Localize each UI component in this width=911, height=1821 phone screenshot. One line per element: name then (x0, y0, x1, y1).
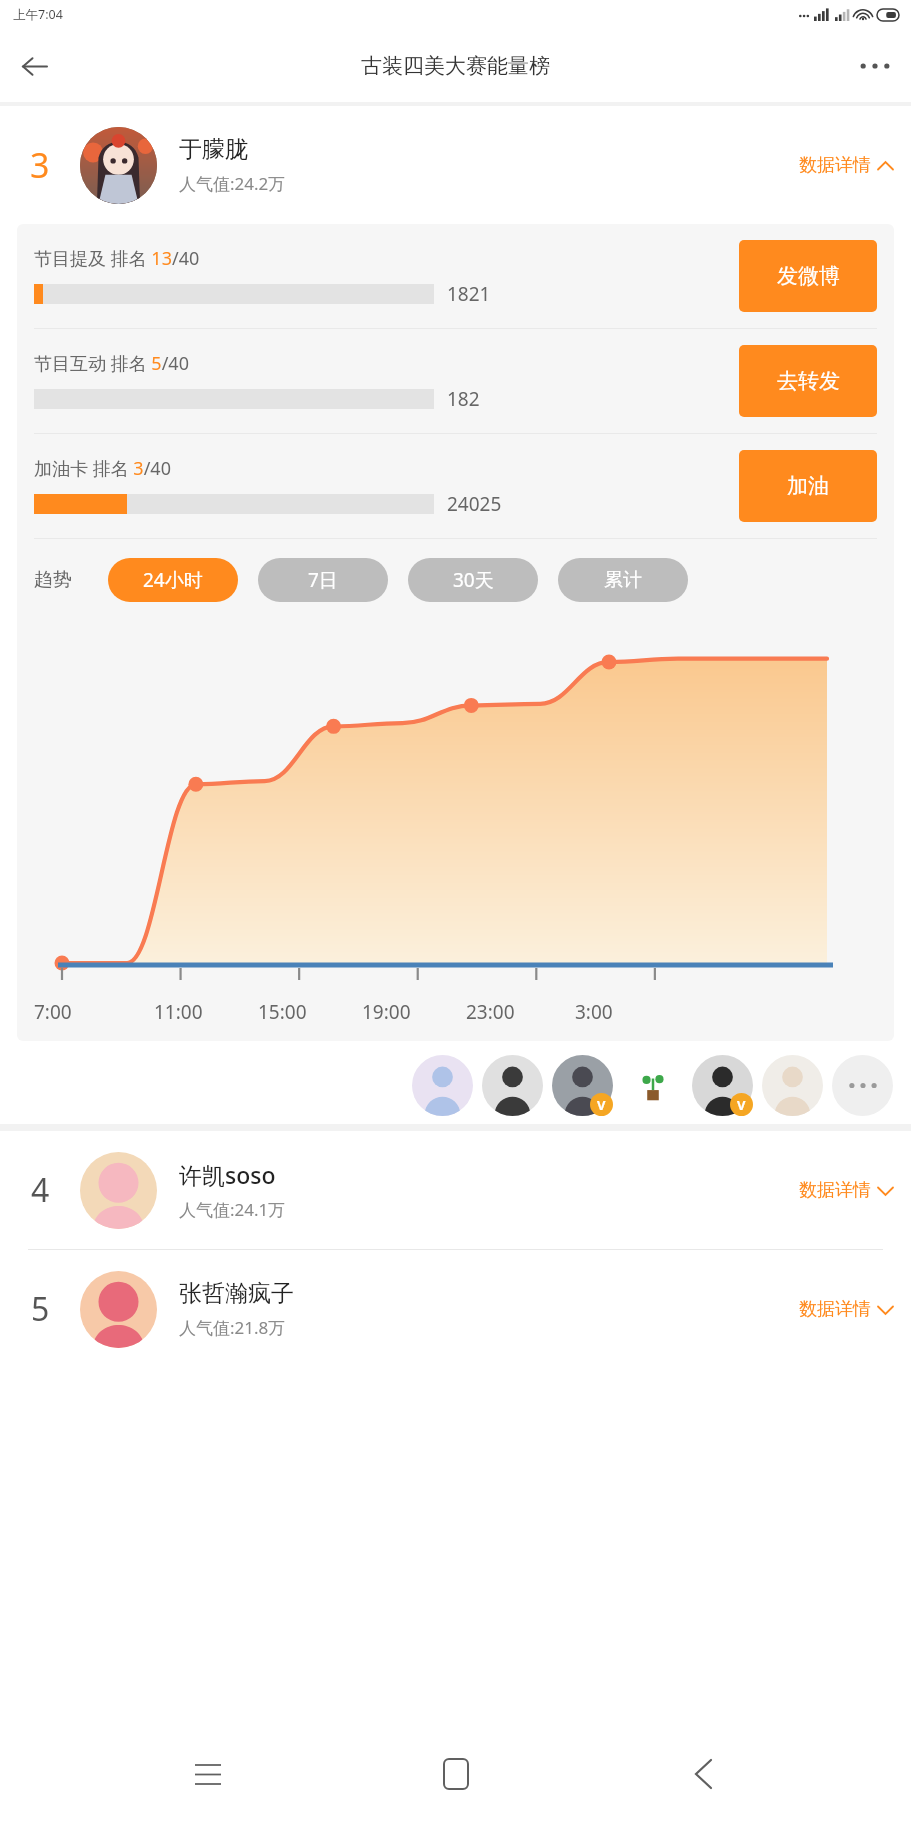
staticText: 加油卡 排名 3/40 (34, 456, 171, 481)
staticText: 数据详情 (799, 1298, 871, 1321)
button[interactable]: 30天 (408, 558, 538, 602)
staticText: 4 (31, 1168, 50, 1212)
button[interactable]: 数据详情 (799, 1298, 893, 1321)
staticText: V (737, 1096, 746, 1114)
staticText: 人气值:24.1万 (179, 1198, 286, 1221)
staticText: 7日 (308, 567, 338, 593)
staticText: 节目提及 排名 13/40 (34, 246, 200, 271)
staticText: 5 (31, 1287, 50, 1331)
staticText: 节目互动 排名 5/40 (34, 351, 189, 376)
staticText: V (597, 1096, 606, 1114)
staticText: 人气值:21.8万 (179, 1316, 286, 1339)
staticText: 趋势 (34, 568, 72, 592)
staticText: 加油 (787, 473, 829, 499)
button[interactable]: Back (8, 40, 60, 92)
button[interactable]: 累计 (558, 558, 688, 602)
button[interactable]: Fan avatar (692, 1055, 753, 1116)
button[interactable]: 数据详情 (799, 1179, 893, 1202)
button[interactable]: Fan avatar (412, 1055, 473, 1116)
button[interactable]: 去转发 (739, 345, 877, 417)
staticText: 15:00 (258, 999, 307, 1025)
button[interactable]: Fan avatar (552, 1055, 613, 1116)
staticText: 24小时 (143, 567, 203, 593)
staticText: 3 (30, 142, 50, 188)
staticText: 许凯soso (179, 1159, 276, 1190)
staticText: 1821 (447, 281, 491, 307)
staticText: 3:00 (575, 999, 613, 1025)
button[interactable]: 加油 (739, 450, 877, 522)
staticText: 人气值:24.2万 (179, 172, 286, 195)
button[interactable]: Back (663, 1734, 743, 1814)
button[interactable]: 7日 (258, 558, 388, 602)
staticText: 去转发 (777, 368, 840, 394)
button[interactable]: Recents (168, 1734, 248, 1814)
staticText: 张哲瀚疯子 (179, 1279, 294, 1308)
button[interactable]: 发微博 (739, 240, 877, 312)
button[interactable]: Fan avatar (762, 1055, 823, 1116)
staticText: 19:00 (362, 999, 411, 1025)
button[interactable]: 5 (0, 1250, 911, 1368)
button[interactable] (622, 1055, 683, 1116)
staticText: 于朦胧 (179, 135, 248, 164)
button[interactable]: Home (416, 1734, 496, 1814)
staticText: 30天 (453, 567, 494, 593)
staticText: 发微博 (777, 263, 840, 289)
staticText: 上午7:04 (13, 6, 63, 23)
staticText: 23:00 (466, 999, 515, 1025)
button[interactable]: More fans (832, 1055, 893, 1116)
button[interactable]: 3 (0, 106, 911, 224)
button[interactable]: More options (849, 40, 901, 92)
button[interactable]: 数据详情 (799, 154, 893, 177)
staticText: 182 (447, 386, 480, 412)
staticText: 24025 (447, 491, 502, 517)
button[interactable]: Fan avatar (482, 1055, 543, 1116)
staticText: 数据详情 (799, 1179, 871, 1202)
staticText: 累计 (604, 568, 642, 592)
staticText: 11:00 (154, 999, 203, 1025)
staticText: 7:00 (34, 999, 72, 1025)
staticText: 数据详情 (799, 154, 871, 177)
button[interactable]: 4 (0, 1131, 911, 1249)
staticText: 古装四美大赛能量榜 (361, 53, 550, 79)
button[interactable]: 24小时 (108, 558, 238, 602)
